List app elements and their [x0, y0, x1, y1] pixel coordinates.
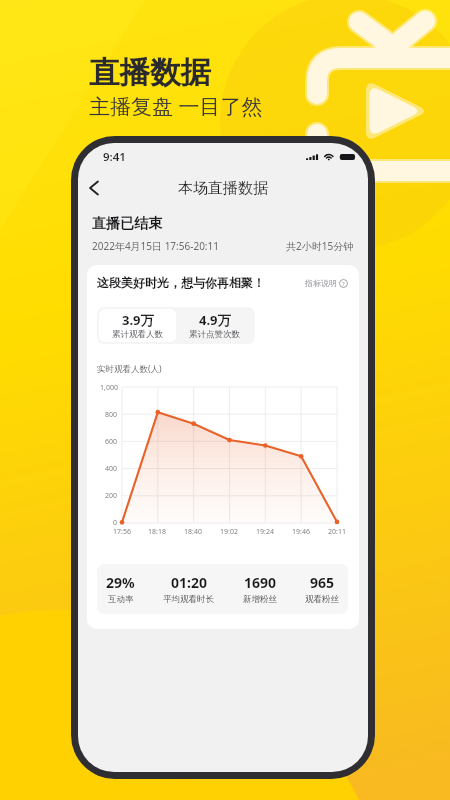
- button[interactable]: 4.9万: [176, 309, 253, 342]
- staticText: 18:40: [184, 527, 202, 537]
- staticText: 19:46: [292, 527, 310, 537]
- staticText: 1,000: [100, 383, 118, 393]
- staticText: 这段美好时光，想与你再相聚！: [97, 275, 265, 290]
- staticText: 01:20: [171, 573, 207, 592]
- staticText: 965: [310, 573, 335, 592]
- staticText: 直播已结束: [92, 215, 162, 233]
- button[interactable]: 29%: [106, 573, 135, 605]
- staticText: 2022年4月15日 17:56-20:11: [92, 239, 219, 253]
- staticText: 19:24: [256, 527, 274, 537]
- staticText: 400: [105, 464, 118, 474]
- staticText: 互动率: [108, 594, 134, 605]
- staticText: 18:18: [148, 527, 166, 537]
- button[interactable]: 1690: [243, 573, 277, 605]
- staticText: 800: [105, 410, 118, 420]
- button[interactable]: 965: [305, 573, 339, 605]
- staticText: ?: [342, 280, 345, 288]
- staticText: 17:56: [113, 527, 131, 537]
- button[interactable]: 指标说明: [305, 278, 348, 288]
- staticText: 本场直播数据: [178, 179, 268, 198]
- button[interactable]: 3.9万: [99, 309, 176, 342]
- staticText: 平均观看时长: [163, 594, 214, 605]
- staticText: 0: [113, 518, 118, 528]
- staticText: 观看粉丝: [305, 594, 339, 605]
- staticText: 29%: [106, 573, 135, 592]
- button[interactable]: Back: [79, 173, 109, 203]
- staticText: 指标说明: [305, 278, 337, 288]
- staticText: 新增粉丝: [243, 594, 277, 605]
- staticText: 20:11: [328, 527, 346, 537]
- staticText: 9:41: [103, 149, 126, 165]
- staticText: 实时观看人数(人): [97, 363, 162, 375]
- staticText: 主播复盘 一目了然: [89, 92, 263, 121]
- staticText: 累计观看人数: [112, 329, 163, 340]
- staticText: 4.9万: [199, 311, 231, 329]
- staticText: 累计点赞次数: [189, 329, 240, 340]
- staticText: 共2小时15分钟: [286, 239, 354, 253]
- staticText: 1690: [244, 573, 277, 592]
- staticText: 19:02: [220, 527, 238, 537]
- button[interactable]: 01:20: [163, 573, 214, 605]
- staticText: 200: [105, 491, 118, 501]
- staticText: 直播数据: [89, 54, 211, 92]
- staticText: 3.9万: [122, 311, 154, 329]
- staticText: 600: [105, 437, 118, 447]
